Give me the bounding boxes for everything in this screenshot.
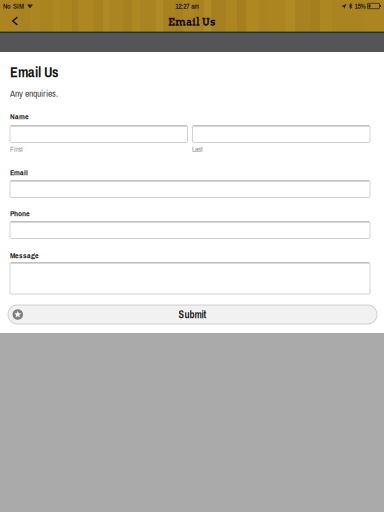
staticText: Submit <box>178 308 206 321</box>
button[interactable]: Submit <box>8 305 377 324</box>
staticText: Email Us <box>168 16 216 28</box>
staticText: Email Us <box>10 62 59 82</box>
staticText: Phone <box>10 208 30 219</box>
staticText: Name <box>10 111 29 122</box>
button[interactable]: Back <box>0 11 28 31</box>
staticText: Any enquiries. <box>10 87 58 100</box>
staticText: Message <box>10 250 39 261</box>
staticText: First <box>10 144 23 154</box>
staticText: Email <box>10 167 28 178</box>
staticText: 12:27 am <box>175 1 199 11</box>
staticText: Last <box>192 144 203 154</box>
staticText: 15% <box>354 1 365 11</box>
staticText: No SIM <box>3 1 24 11</box>
